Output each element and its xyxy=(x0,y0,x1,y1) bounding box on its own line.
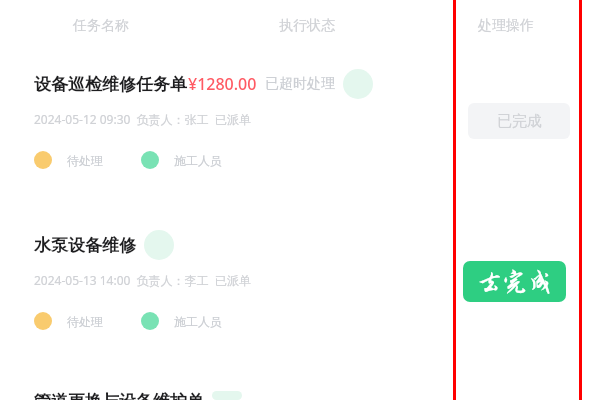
button[interactable]: 已完成 xyxy=(468,103,570,139)
button[interactable]: 待处理 xyxy=(34,312,103,330)
button[interactable]: 管道更换与设备维护单 xyxy=(0,391,600,400)
staticText: 2024-05-12 09:30 负责人：张工 已派单 xyxy=(34,111,251,127)
button[interactable]: 水泵设备维修 xyxy=(0,230,600,330)
button[interactable]: 执行状态 xyxy=(202,17,412,35)
button[interactable]: 设备巡检维修任务单 xyxy=(0,69,600,169)
staticText: ¥1280.00 xyxy=(188,73,257,95)
staticText: 施工人员 xyxy=(174,314,222,329)
button[interactable]: 施工人员 xyxy=(141,151,222,169)
staticText: 已超时处理 xyxy=(265,75,335,93)
button[interactable]: 施工人员 xyxy=(141,312,222,330)
button[interactable]: 去完成 xyxy=(463,261,566,302)
button[interactable]: 任务名称 xyxy=(0,17,202,35)
button[interactable]: 待处理 xyxy=(34,151,103,169)
staticText: 管道更换与设备维护单 xyxy=(34,391,204,400)
staticText: 设备巡检维修任务单 xyxy=(34,74,187,95)
staticText: 处理操作 xyxy=(478,17,534,35)
staticText: 水泵设备维修 xyxy=(34,235,136,256)
staticText: 施工人员 xyxy=(174,153,222,168)
staticText: 待处理 xyxy=(67,314,103,329)
staticText: 去完成 xyxy=(477,268,553,296)
staticText: 2024-05-13 14:00 负责人：李工 已派单 xyxy=(34,272,251,288)
staticText: 已完成 xyxy=(497,112,542,131)
staticText: 任务名称 xyxy=(73,17,129,35)
staticText: 待处理 xyxy=(67,153,103,168)
button[interactable]: 处理操作 xyxy=(412,17,600,35)
staticText: 执行状态 xyxy=(279,17,335,35)
